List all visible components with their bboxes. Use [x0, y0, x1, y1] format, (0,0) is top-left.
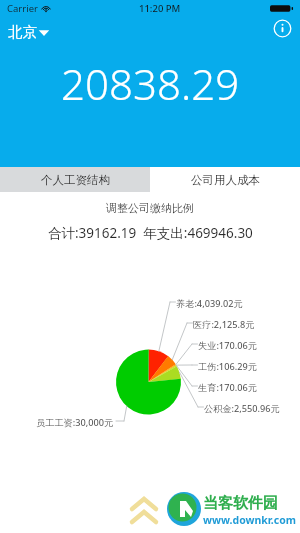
button[interactable]: 北京 [6, 21, 52, 43]
staticText: 合计:39162.19 年支出:469946.30 [48, 224, 253, 242]
button[interactable]: Info [273, 19, 292, 38]
staticText: 北京 [8, 23, 37, 41]
staticText: 员工工资:30,000元 [36, 416, 114, 429]
staticText: 个人工资结构 [41, 173, 110, 187]
staticText: 调整公司缴纳比例 [106, 201, 194, 215]
staticText: 失业:170.06元 [198, 339, 257, 352]
staticText: Carrier [7, 2, 38, 15]
staticText: 公积金:2,550.96元 [204, 402, 280, 415]
staticText: www.downkr.com [203, 513, 296, 527]
staticText: 医疗:2,125.8元 [193, 318, 255, 331]
staticText: 当客软件园 [203, 494, 278, 513]
staticText: 20838.29 [61, 55, 240, 112]
button[interactable]: 公司用人成本 [150, 167, 300, 192]
staticText: 工伤:106.29元 [198, 360, 257, 373]
staticText: 11:20 PM [139, 2, 181, 15]
button[interactable]: 个人工资结构 [0, 167, 150, 192]
staticText: 养老:4,039.02元 [176, 297, 243, 310]
staticText: 公司用人成本 [191, 173, 260, 187]
staticText: 生育:170.06元 [198, 381, 257, 394]
